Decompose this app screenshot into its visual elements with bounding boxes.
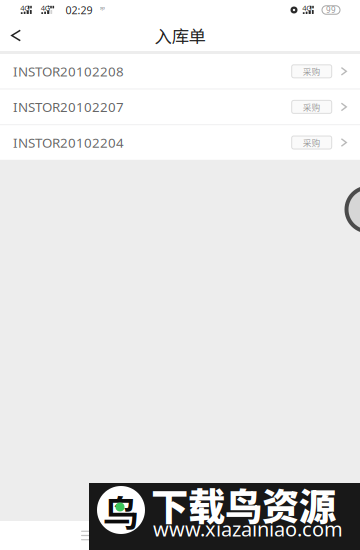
staticText: 99 xyxy=(326,5,336,15)
staticText: 鸟 xyxy=(103,485,139,537)
staticText: 入库单 xyxy=(154,23,205,48)
staticText: ⁰ᴵ⁰ xyxy=(99,5,104,15)
staticText: 4G xyxy=(302,3,311,13)
staticText: 采购 xyxy=(303,136,321,149)
button[interactable]: INSTOR20102204 xyxy=(0,125,360,160)
staticText: 4G xyxy=(41,3,50,13)
staticText: 下载鸟资源 xyxy=(151,477,336,531)
staticText: INSTOR20102204 xyxy=(13,133,124,152)
staticText: 采购 xyxy=(303,101,321,113)
staticText: www.xiazainiao.com xyxy=(153,515,343,542)
button[interactable]: INSTOR20102208 xyxy=(0,54,360,89)
button[interactable]: Back xyxy=(0,20,32,51)
staticText: 4G xyxy=(20,3,29,13)
button[interactable]: INSTOR20102207 xyxy=(0,90,360,124)
staticText: 02:29 xyxy=(65,3,92,17)
staticText: INSTOR20102208 xyxy=(13,62,124,80)
staticText: 采购 xyxy=(303,65,321,77)
staticText: INSTOR20102207 xyxy=(13,98,124,116)
